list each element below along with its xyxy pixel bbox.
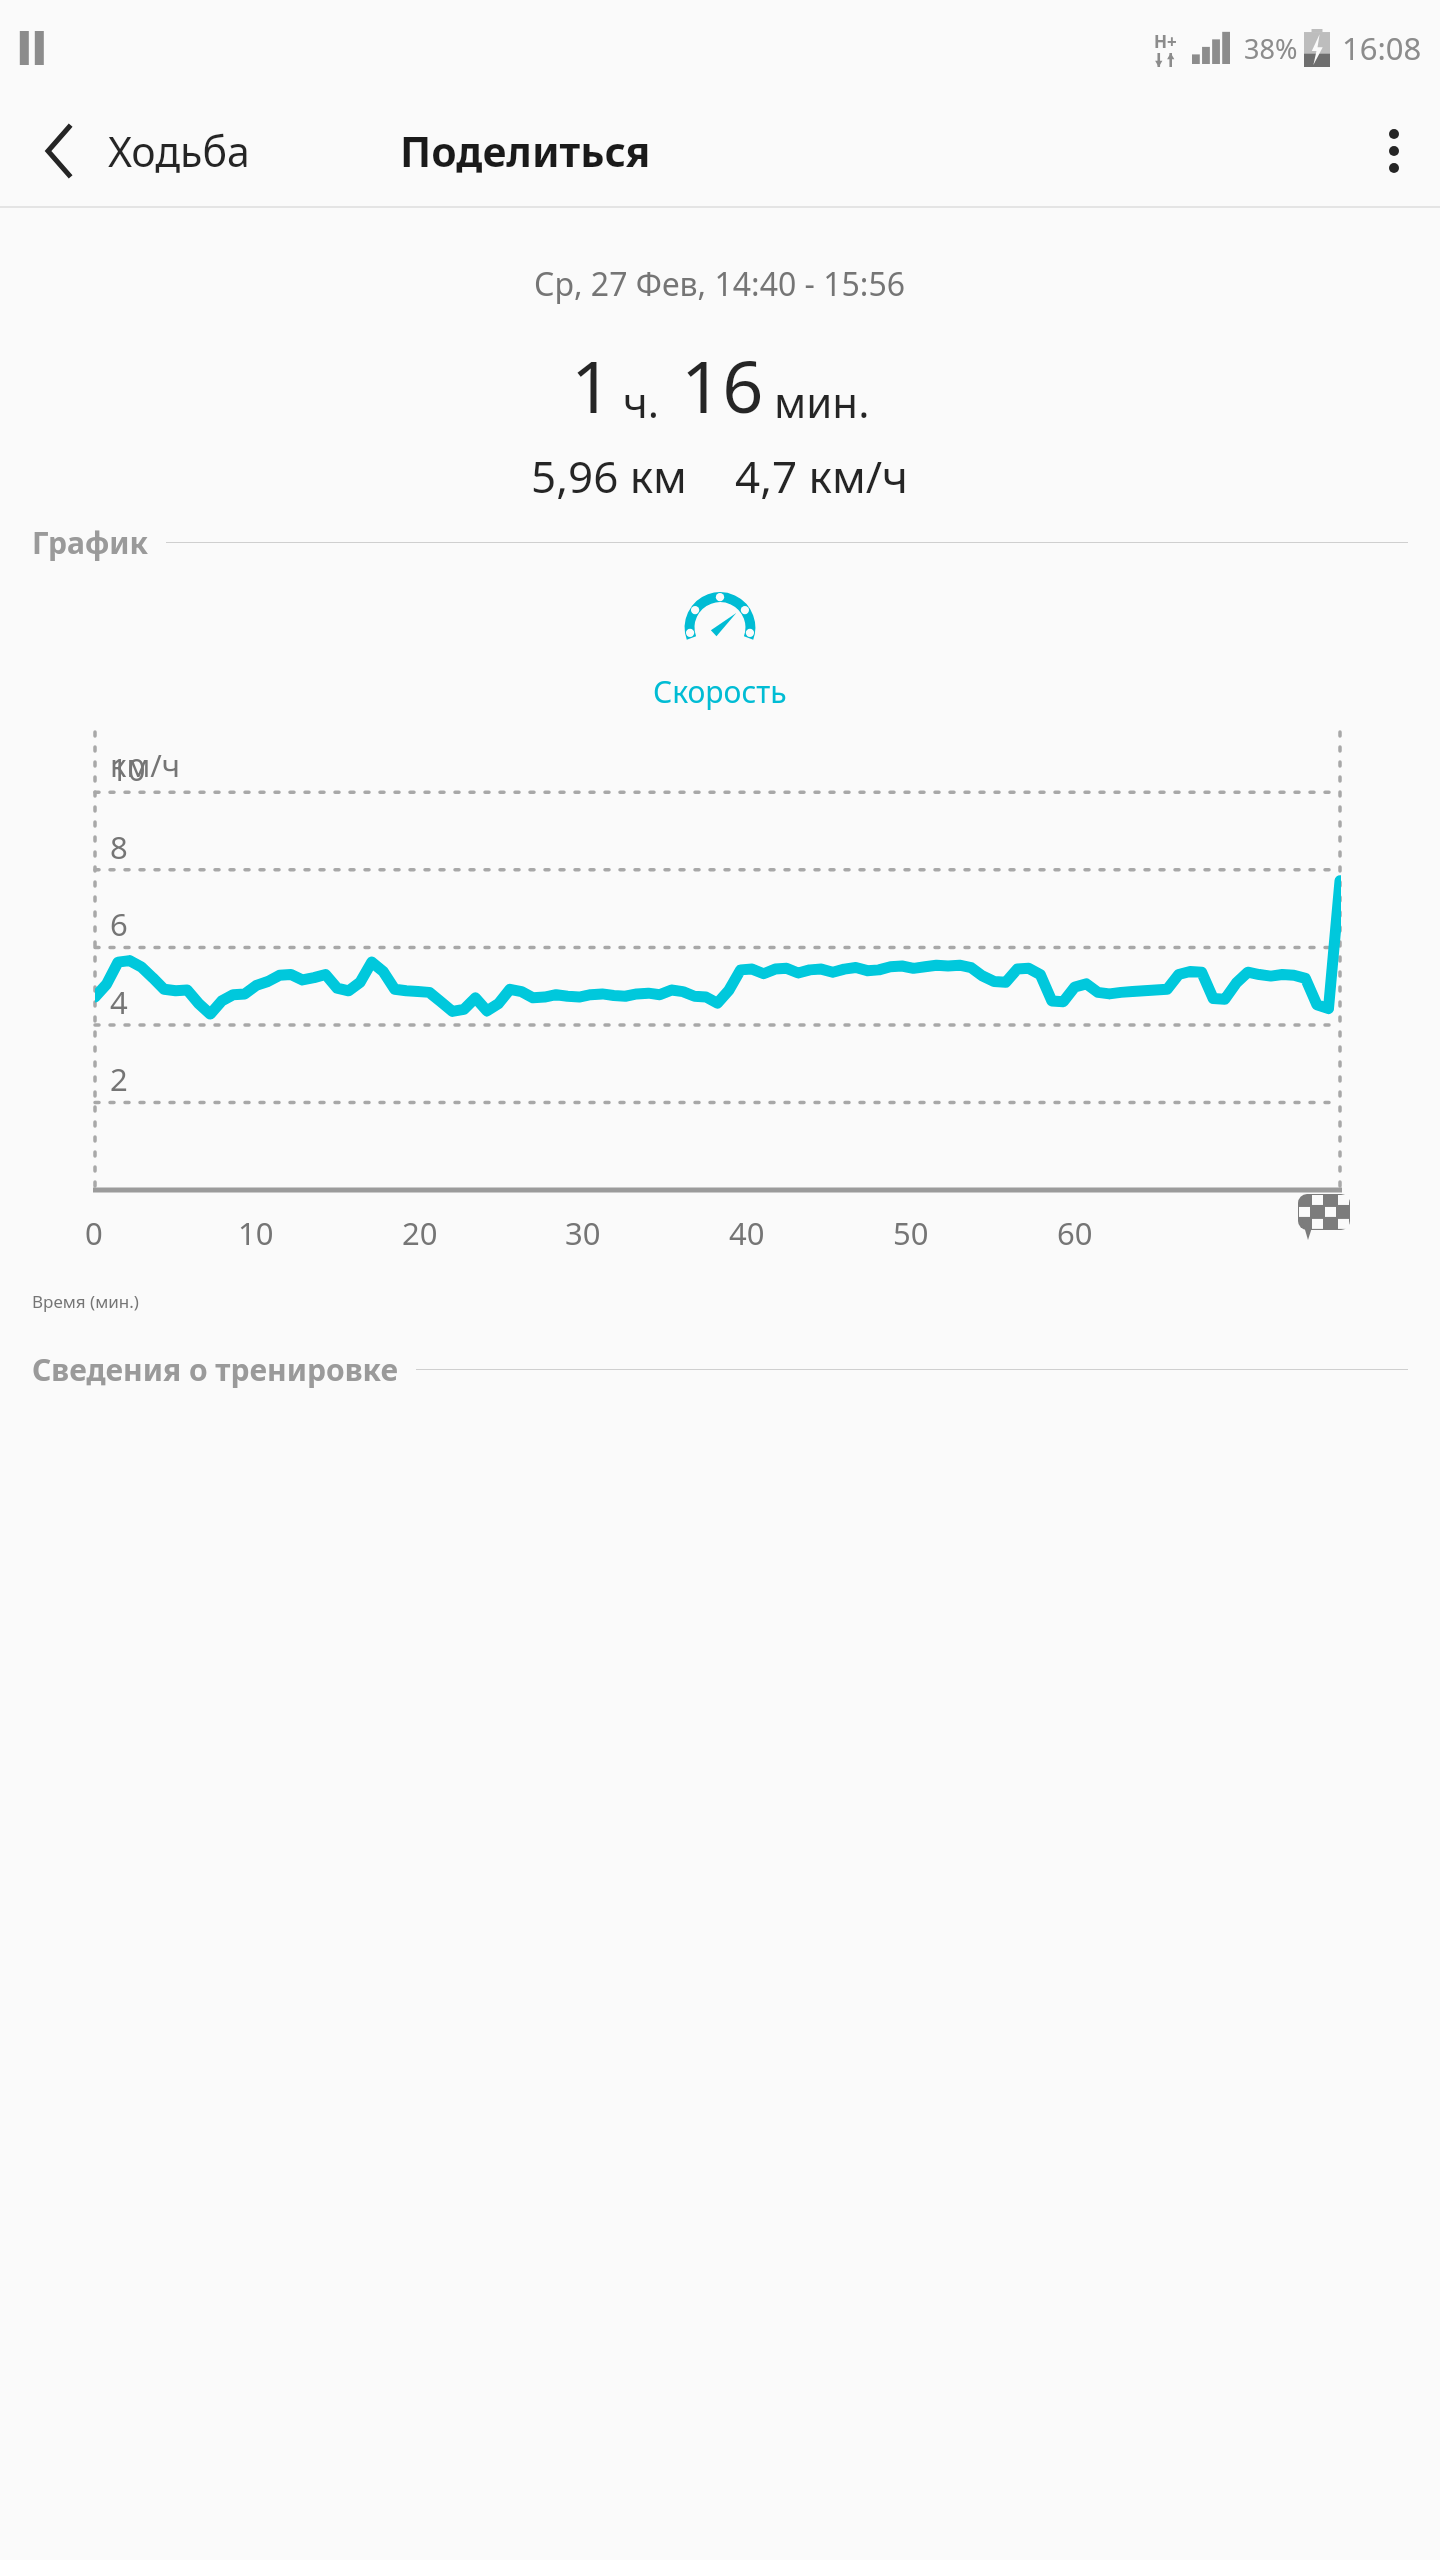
staticText: Сведения о тренировке	[32, 1349, 398, 1390]
staticText: мин.	[774, 373, 870, 430]
staticText: 8	[110, 826, 128, 868]
staticText: 4	[110, 981, 128, 1023]
staticText: График	[32, 522, 148, 563]
staticText: км/ч	[110, 744, 181, 786]
staticText: 50	[893, 1212, 929, 1254]
staticText: Ходьба	[108, 123, 250, 179]
staticText: Скорость	[653, 671, 787, 712]
staticText: Время (мин.)	[32, 1290, 139, 1313]
staticText: 30	[565, 1212, 601, 1254]
staticText: 40	[729, 1212, 765, 1254]
staticText: 16:08	[1342, 27, 1422, 69]
staticText: 5,96 км	[531, 446, 687, 506]
staticText: 2	[110, 1058, 128, 1100]
button[interactable]: Назад	[12, 103, 108, 199]
staticText: 60	[1057, 1212, 1093, 1254]
staticText: 10	[238, 1212, 274, 1254]
staticText: 38%	[1244, 30, 1298, 67]
staticText: 16	[681, 336, 764, 434]
staticText: 10	[110, 748, 146, 790]
button[interactable]: Скорость	[0, 585, 1440, 712]
staticText: 1	[571, 336, 613, 434]
staticText: 6	[110, 903, 128, 945]
staticText: 0	[85, 1212, 103, 1254]
staticText: H+	[1154, 30, 1177, 53]
button[interactable]: Поделиться	[400, 123, 651, 179]
staticText: ч.	[623, 373, 659, 430]
staticText: Поделиться	[400, 123, 651, 179]
button[interactable]: Ходьба	[108, 123, 250, 179]
staticText: 4,7 км/ч	[735, 446, 909, 506]
staticText: 20	[402, 1212, 438, 1254]
button[interactable]: Ещё	[1348, 105, 1440, 197]
staticText: Ср, 27 Фев, 14:40 - 15:56	[534, 262, 906, 306]
